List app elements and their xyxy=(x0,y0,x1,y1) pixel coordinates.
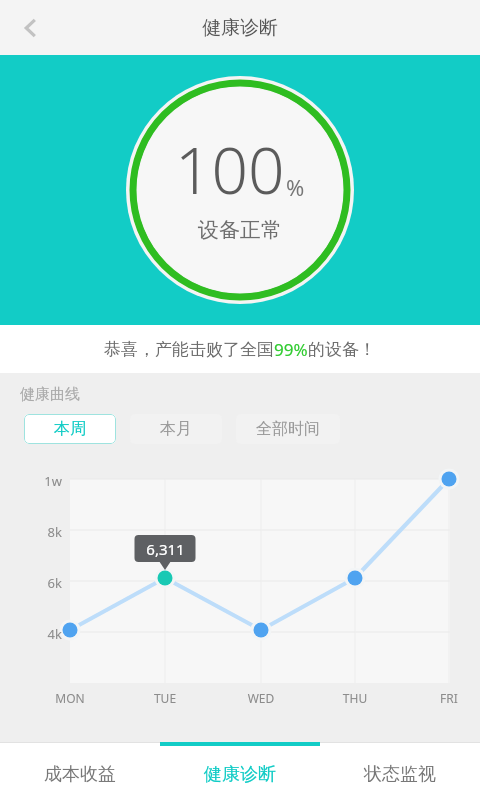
staticText: 99% xyxy=(274,338,308,361)
staticText: 设备正常 xyxy=(198,217,282,243)
staticText: 恭喜，产能击败了全国 xyxy=(104,339,274,360)
button[interactable]: 状态监视 xyxy=(320,742,480,800)
staticText: WED xyxy=(236,690,286,706)
staticText: 成本收益 xyxy=(44,763,116,786)
staticText: 100 xyxy=(175,126,285,213)
button[interactable]: 健康诊断 xyxy=(160,742,320,800)
staticText: THU xyxy=(330,690,380,706)
staticText: 健康诊断 xyxy=(204,763,276,786)
staticText: 8k xyxy=(26,523,62,541)
staticText: 状态监视 xyxy=(364,763,436,786)
staticText: TUE xyxy=(140,690,190,706)
staticText: MON xyxy=(45,690,95,706)
staticText: 健康诊断 xyxy=(202,16,278,40)
staticText: FRI xyxy=(424,690,474,706)
staticText: 健康曲线 xyxy=(20,385,80,404)
staticText: 4k xyxy=(26,625,62,643)
button[interactable]: Back xyxy=(8,5,54,51)
staticText: 全部时间 xyxy=(256,419,320,439)
staticText: 的设备！ xyxy=(308,339,376,360)
staticText: 1w xyxy=(26,472,62,490)
button[interactable]: 全部时间 xyxy=(236,414,340,444)
staticText: 6k xyxy=(26,574,62,592)
button[interactable]: 成本收益 xyxy=(0,742,160,800)
staticText: 本月 xyxy=(160,419,192,439)
button[interactable]: 本周 xyxy=(24,414,116,444)
staticText: 本周 xyxy=(54,419,86,439)
staticText: % xyxy=(286,172,305,202)
button[interactable]: 本月 xyxy=(130,414,222,444)
staticText: 6,311 xyxy=(135,539,196,559)
